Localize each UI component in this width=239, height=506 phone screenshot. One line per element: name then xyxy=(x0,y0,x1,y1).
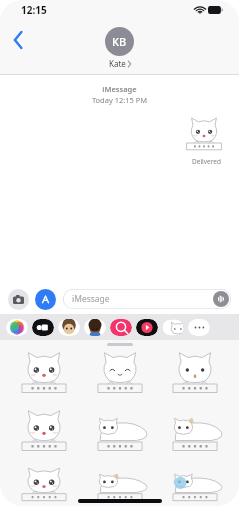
button[interactable]: Sticker 1 xyxy=(8,349,80,407)
button[interactable]: KB xyxy=(105,27,134,69)
button[interactable]: Apps xyxy=(35,289,56,310)
button[interactable]: Stickers xyxy=(162,319,184,336)
button[interactable]: Sticker 4 xyxy=(8,407,80,465)
staticText: 12:15 xyxy=(21,3,47,17)
button[interactable]: Sticker 7 xyxy=(8,465,80,506)
staticText: iMessage xyxy=(72,293,110,305)
button[interactable]: Photos xyxy=(6,319,28,336)
button[interactable]: Camera xyxy=(8,289,29,310)
staticText: Kate xyxy=(109,58,126,69)
button[interactable]: Back xyxy=(5,27,31,53)
button[interactable]: Sticker 9 xyxy=(159,465,231,506)
staticText: Delivered xyxy=(192,157,221,166)
button[interactable]: Sticker 3 xyxy=(159,349,231,407)
button[interactable]: Sticker 6 xyxy=(159,407,231,465)
staticText: Today 12:15 PM xyxy=(0,95,239,105)
button[interactable]: Search GIFs xyxy=(110,319,132,336)
button[interactable]: Audio message xyxy=(213,291,229,307)
button[interactable]: iMessage xyxy=(63,289,231,309)
button[interactable]: Memoji xyxy=(58,319,80,336)
button[interactable]: Music xyxy=(136,319,158,336)
staticText: KB xyxy=(112,34,127,49)
button[interactable]: Sticker 8 xyxy=(84,465,156,506)
staticText: iMessage xyxy=(0,84,239,94)
button[interactable] xyxy=(181,115,227,155)
button[interactable]: Sticker 5 xyxy=(84,407,156,465)
button[interactable]: Apple Pay xyxy=(32,319,54,336)
button[interactable]: Resize sticker panel xyxy=(107,343,133,346)
button[interactable]: Memoji two xyxy=(84,319,106,336)
button[interactable]: Sticker 2 xyxy=(84,349,156,407)
button[interactable]: More xyxy=(188,319,210,336)
